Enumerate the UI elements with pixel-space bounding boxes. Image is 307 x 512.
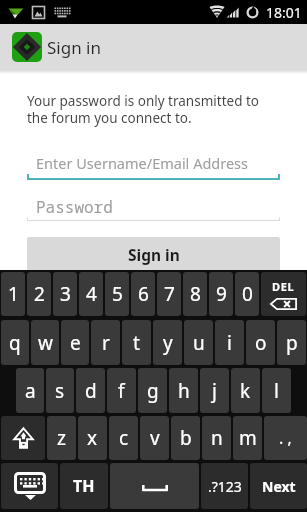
staticText: Next	[262, 477, 296, 496]
button[interactable]: Delete	[261, 272, 306, 316]
staticText: . ,	[279, 427, 292, 449]
button[interactable]: 4	[79, 272, 103, 316]
button[interactable]: m	[233, 416, 262, 460]
button[interactable]: 6	[131, 272, 155, 316]
staticText: .?123	[208, 477, 242, 496]
staticText: a	[25, 378, 36, 404]
button[interactable]: y	[153, 320, 182, 365]
button[interactable]: 3	[53, 272, 77, 316]
button[interactable]: i	[215, 320, 244, 365]
staticText: Enter Username/Email Address	[36, 153, 249, 173]
staticText: z	[57, 425, 66, 451]
button[interactable]: v	[140, 416, 169, 460]
button[interactable]: Shift	[1, 416, 45, 460]
button[interactable]: j	[200, 368, 229, 413]
button[interactable]: 9	[209, 272, 233, 316]
button[interactable]: Next	[250, 463, 307, 509]
button[interactable]: k	[231, 368, 260, 413]
button[interactable]: 7	[157, 272, 181, 316]
button[interactable]: g	[138, 368, 167, 413]
staticText: DEL	[272, 279, 295, 294]
button[interactable]: . ,	[264, 416, 307, 460]
staticText: l	[274, 378, 279, 404]
button[interactable]: e	[61, 320, 89, 365]
button[interactable]: h	[169, 368, 198, 413]
staticText: p	[286, 330, 298, 356]
staticText: 2	[34, 281, 45, 307]
staticText: r	[102, 330, 110, 356]
staticText: Your password is only transmitted to the…	[27, 92, 274, 127]
staticText: 1	[8, 281, 19, 307]
button[interactable]: s	[46, 368, 74, 413]
button[interactable]: z	[47, 416, 76, 460]
button[interactable]: Space	[110, 463, 199, 509]
staticText: c	[119, 425, 129, 451]
staticText: Sign in	[128, 244, 180, 265]
staticText: j	[212, 378, 217, 404]
button[interactable]: 2	[27, 272, 51, 316]
staticText: 4	[86, 281, 97, 307]
button[interactable]: TH	[60, 463, 108, 509]
staticText: q	[9, 330, 21, 356]
staticText: t	[133, 330, 140, 356]
staticText: b	[180, 425, 192, 451]
button[interactable]: c	[109, 416, 138, 460]
button[interactable]: p	[277, 320, 306, 365]
staticText: y	[163, 330, 173, 356]
button[interactable]: 0	[235, 272, 259, 316]
button[interactable]: Hide keyboard	[1, 463, 58, 509]
button[interactable]: Sign in	[27, 237, 280, 271]
button[interactable]: t	[122, 320, 151, 365]
staticText: d	[85, 378, 97, 404]
staticText: n	[211, 425, 223, 451]
button[interactable]: x	[78, 416, 107, 460]
staticText: g	[147, 378, 159, 404]
button[interactable]: b	[171, 416, 200, 460]
staticText: 0	[242, 281, 253, 307]
button[interactable]: d	[76, 368, 105, 413]
button[interactable]: Password	[27, 193, 280, 221]
staticText: 6	[138, 281, 149, 307]
staticText: 18:01	[266, 3, 302, 22]
staticText: o	[255, 330, 267, 356]
button[interactable]: n	[202, 416, 231, 460]
staticText: 7	[164, 281, 175, 307]
staticText: h	[178, 378, 190, 404]
staticText: f	[118, 378, 125, 404]
button[interactable]: .?123	[201, 463, 248, 509]
staticText: 9	[216, 281, 227, 307]
button[interactable]: o	[246, 320, 275, 365]
staticText: m	[239, 425, 257, 451]
button[interactable]: l	[262, 368, 291, 413]
staticText: e	[70, 330, 81, 356]
button[interactable]: f	[107, 368, 136, 413]
staticText: Sign in	[47, 36, 101, 59]
button[interactable]: r	[91, 320, 120, 365]
button[interactable]: 1	[1, 272, 25, 316]
staticText: 5	[112, 281, 123, 307]
staticText: 3	[60, 281, 71, 307]
button[interactable]: 8	[183, 272, 207, 316]
button[interactable]: Enter Username/Email Address	[27, 152, 280, 180]
button[interactable]: a	[16, 368, 44, 413]
staticText: 8	[190, 281, 201, 307]
staticText: TH	[73, 475, 95, 497]
staticText: x	[87, 425, 98, 451]
staticText: w	[38, 330, 53, 356]
button[interactable]: u	[184, 320, 213, 365]
staticText: s	[55, 378, 65, 404]
button[interactable]: w	[31, 320, 59, 365]
button[interactable]: 5	[105, 272, 129, 316]
staticText: v	[150, 425, 160, 451]
button[interactable]: q	[1, 320, 29, 365]
staticText: u	[193, 330, 205, 356]
staticText: k	[240, 378, 251, 404]
staticText: Password	[36, 196, 113, 218]
staticText: i	[227, 330, 232, 356]
